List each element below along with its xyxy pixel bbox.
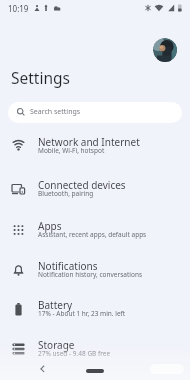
button[interactable]: Connected devices: [0, 168, 190, 210]
staticText: Connected devices: [38, 178, 126, 192]
staticText: Storage: [38, 338, 75, 352]
button[interactable]: Notifications: [0, 249, 190, 291]
button[interactable]: Battery: [0, 288, 190, 330]
staticText: Apps: [38, 219, 62, 233]
staticText: Assistant, recent apps, default apps: [38, 230, 147, 239]
staticText: Settings: [11, 67, 70, 88]
staticText: Notification history, conversations: [38, 270, 143, 279]
staticText: Network and Internet: [38, 135, 140, 149]
staticText: Battery: [38, 298, 73, 312]
staticText: 17% - About 1 hr, 23 min. left: [38, 309, 126, 318]
button[interactable]: [153, 38, 177, 62]
button[interactable]: Apps: [0, 209, 190, 251]
button[interactable]: Search settings: [8, 102, 182, 123]
staticText: Bluetooth, pairing: [38, 189, 94, 198]
button[interactable]: Network and Internet: [0, 125, 190, 167]
staticText: 10:19: [8, 3, 29, 14]
staticText: 27% used - 9.48 GB free: [38, 349, 111, 358]
staticText: Notifications: [38, 259, 98, 273]
staticText: Mobile, Wi-Fi, hotspot: [38, 146, 105, 155]
button[interactable]: [86, 369, 104, 373]
button[interactable]: Storage: [0, 328, 190, 370]
staticText: Search settings: [30, 107, 81, 117]
